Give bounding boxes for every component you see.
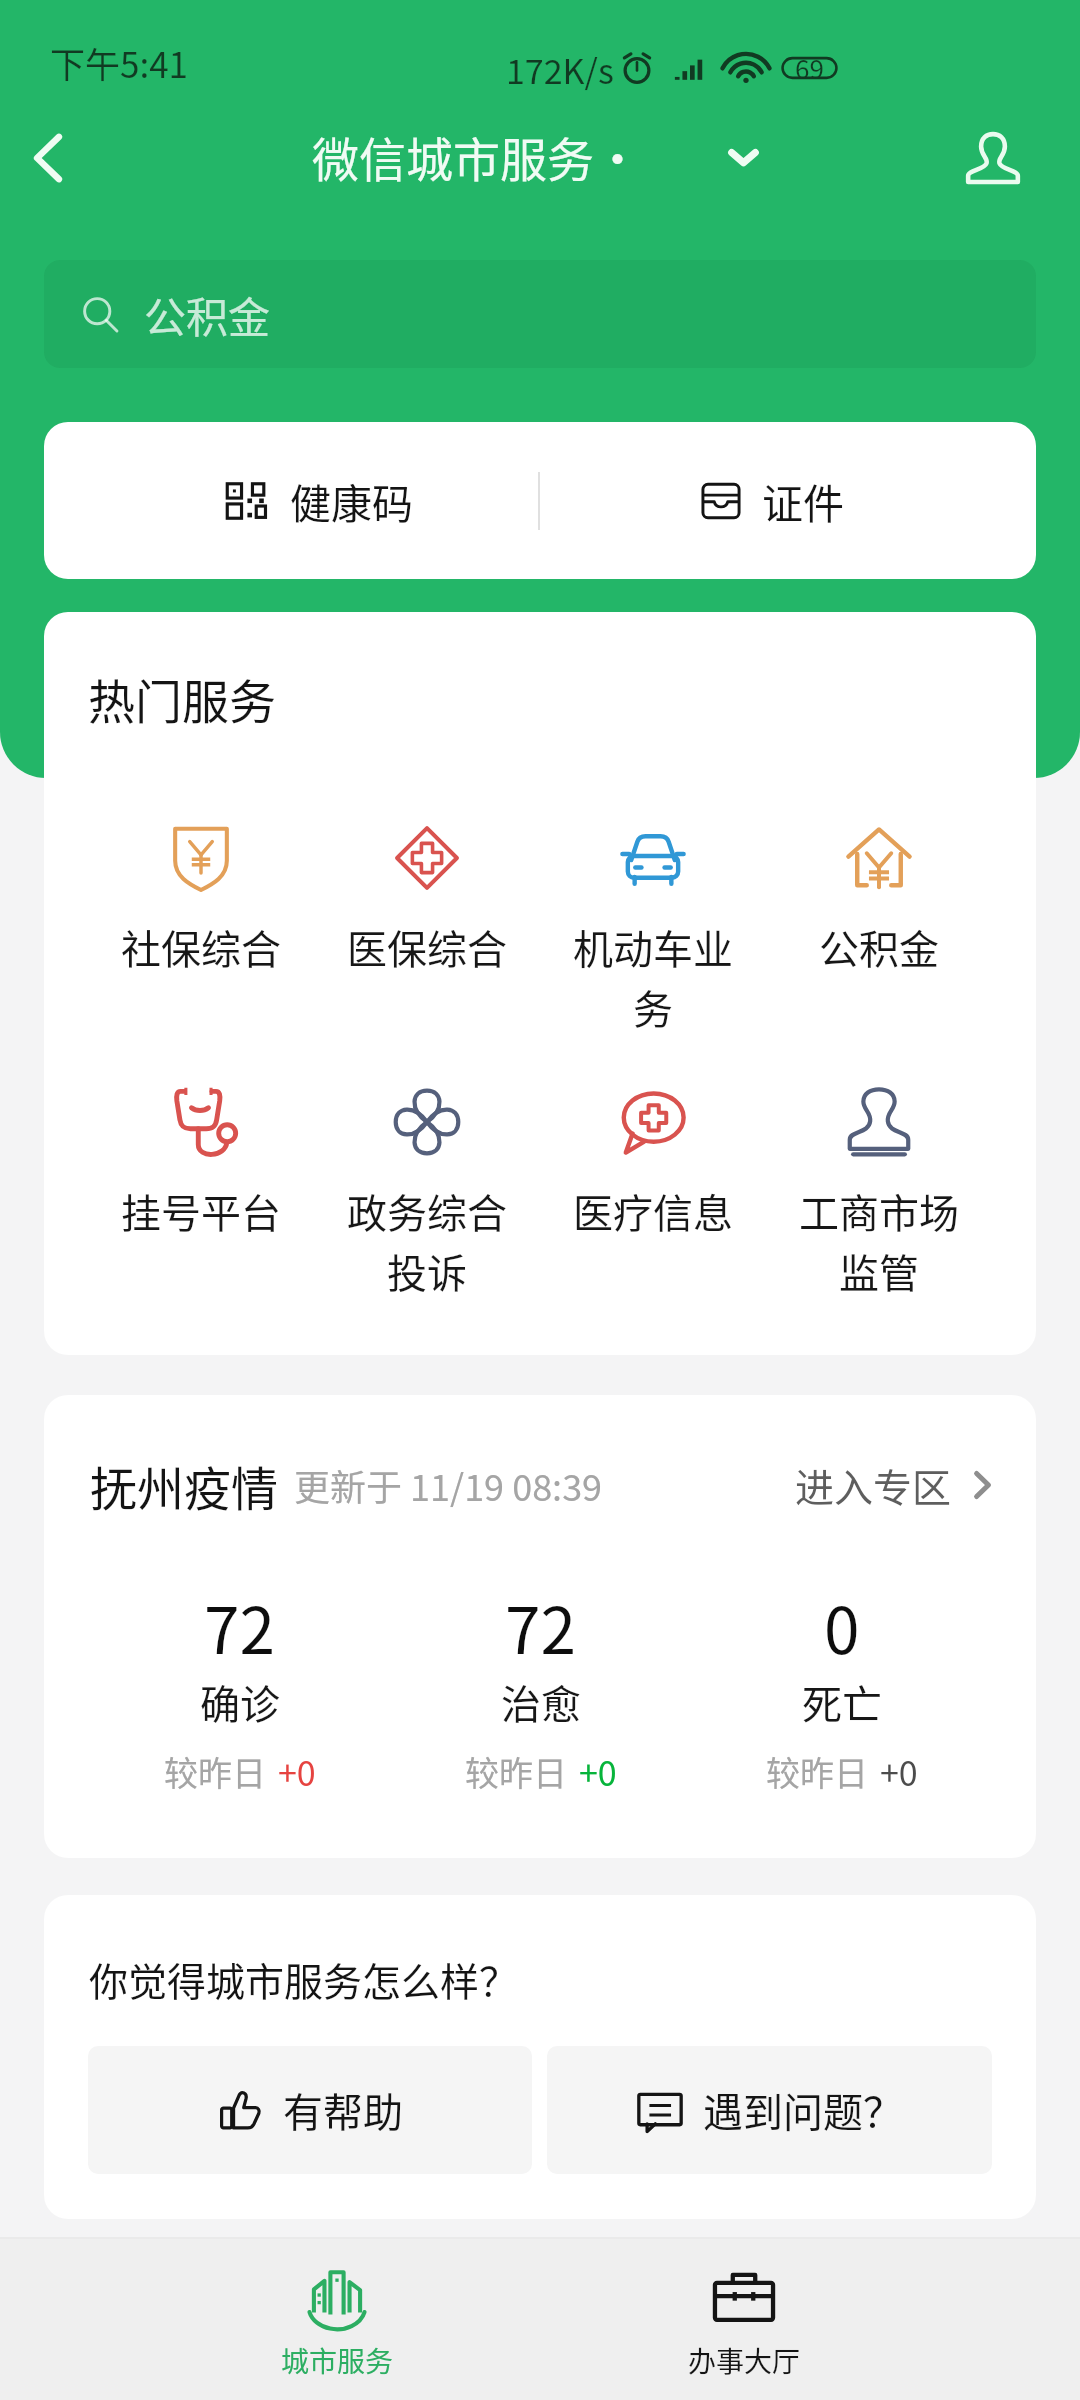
button[interactable]: 健康码 [226, 422, 546, 579]
staticText: 热门服务 [88, 664, 276, 732]
staticText: 遇到问题？ [703, 2081, 903, 2139]
staticText: 政务综合投诉 [332, 1182, 522, 1300]
staticText: 办事大厅 [688, 2340, 801, 2381]
button[interactable]: 办事大厅 [619, 2239, 869, 2400]
staticText: +0 [278, 1747, 316, 1796]
button[interactable]: 城市服务 [212, 2239, 462, 2400]
staticText: 机动车业务 [558, 918, 748, 1036]
staticText: 较昨日 [766, 1747, 868, 1796]
staticText: 挂号平台 [106, 1182, 296, 1240]
staticText: 下午5:41 [50, 37, 189, 88]
staticText: 进入专区 [795, 1457, 952, 1513]
button[interactable]: Back [0, 110, 96, 206]
button[interactable]: 微信城市服务· [306, 112, 766, 204]
staticText: 工商市场监管 [784, 1182, 974, 1300]
staticText: 城市服务 [281, 2340, 394, 2381]
staticText: 治愈 [501, 1673, 581, 1731]
staticText: 社保综合 [106, 918, 296, 976]
staticText: 抚州疫情 [90, 1451, 278, 1519]
button[interactable]: 遇到问题？ [547, 2046, 992, 2174]
staticText: 公积金 [144, 284, 271, 345]
staticText: 更新于 11/19 08:39 [294, 1459, 603, 1511]
staticText: 较昨日 [465, 1747, 567, 1796]
button[interactable]: 有帮助 [88, 2046, 532, 2174]
button[interactable]: 社保综合 [88, 824, 314, 976]
staticText: +0 [579, 1747, 617, 1796]
button[interactable]: 进入专区 [795, 1457, 1000, 1513]
staticText: 公积金 [784, 918, 974, 976]
staticText: 172K/s [506, 45, 614, 94]
button[interactable]: 公积金 [44, 260, 1036, 368]
button[interactable]: 政务综合投诉 [314, 1088, 540, 1300]
button[interactable]: 医疗信息 [540, 1088, 766, 1240]
staticText: 72 [204, 1580, 276, 1673]
button[interactable]: 机动车业务 [540, 824, 766, 1036]
staticText: 有帮助 [283, 2081, 403, 2139]
staticText: 较昨日 [164, 1747, 266, 1796]
button[interactable]: 医保综合 [314, 824, 540, 976]
staticText: 0 [824, 1580, 860, 1673]
button[interactable]: 证件 [700, 422, 1000, 579]
staticText: 69 [795, 49, 824, 87]
button[interactable]: 公积金 [766, 824, 992, 976]
staticText: 医保综合 [332, 918, 522, 976]
staticText: 死亡 [802, 1673, 882, 1731]
staticText: 健康码 [290, 471, 413, 530]
button[interactable]: Profile [945, 110, 1041, 206]
staticText: +0 [880, 1747, 918, 1796]
button[interactable]: 工商市场监管 [766, 1088, 992, 1300]
staticText: 医疗信息 [558, 1182, 748, 1240]
staticText: 微信城市服务· [312, 122, 641, 190]
staticText: 证件 [762, 471, 844, 530]
button[interactable]: 挂号平台 [88, 1088, 314, 1240]
staticText: 你觉得城市服务怎么样？ [89, 1951, 519, 2007]
staticText: 确诊 [200, 1673, 280, 1731]
staticText: 72 [505, 1580, 577, 1673]
